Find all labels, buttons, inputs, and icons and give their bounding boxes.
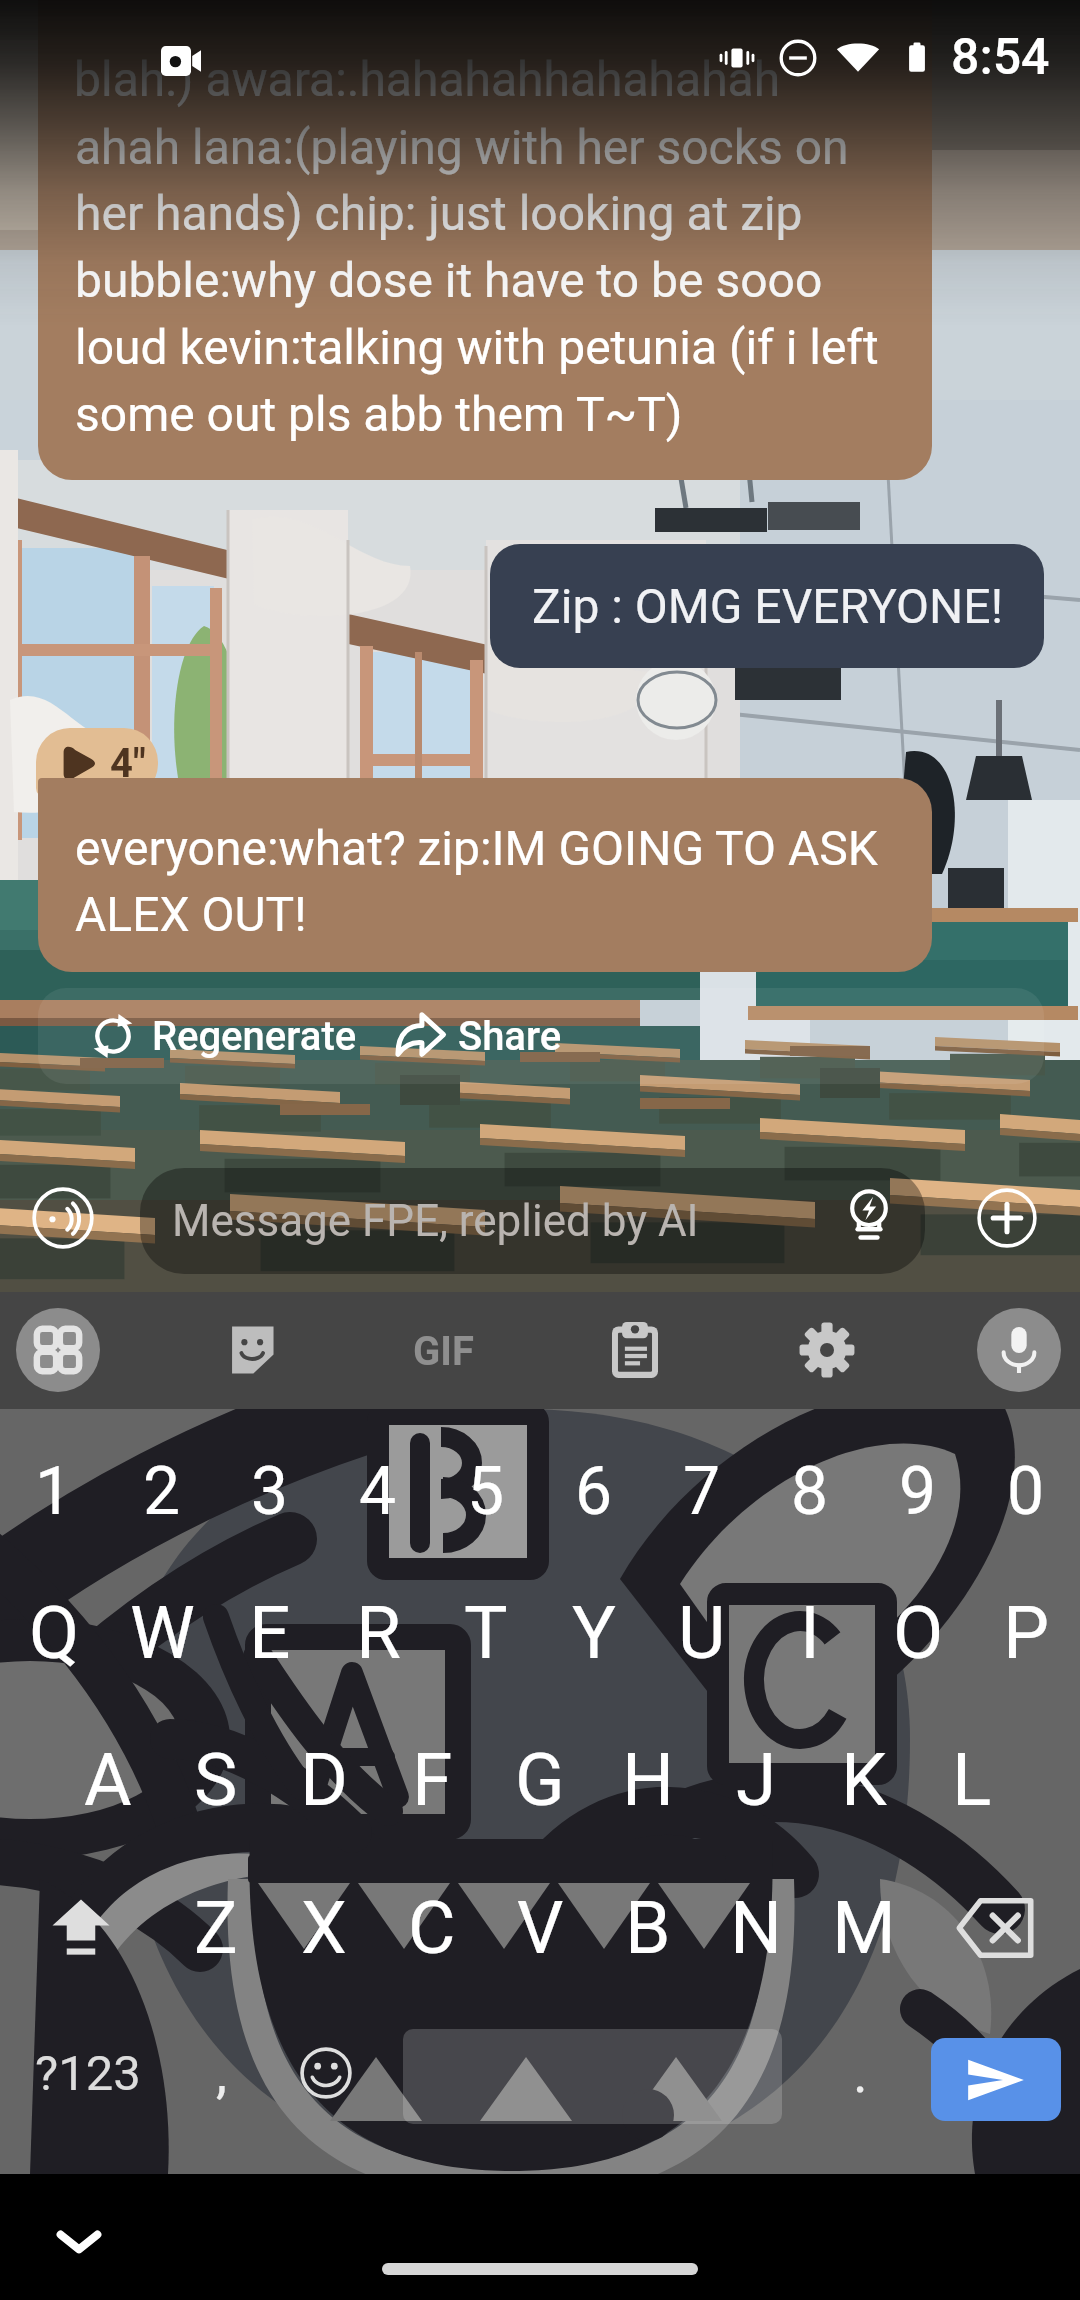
staticText: Share <box>458 1013 562 1060</box>
staticText: GIF <box>413 1328 474 1375</box>
button[interactable]: ?123 <box>28 2029 148 2117</box>
staticText: 4" <box>110 740 146 787</box>
button[interactable]: 5 <box>432 1437 540 1545</box>
staticText: Zip : OMG EVERYONE! <box>532 578 1003 634</box>
staticText: C <box>408 1885 456 1971</box>
staticText: blah:) awara:.hahahahhahahahah <box>74 51 954 107</box>
button[interactable]: 0 <box>972 1437 1080 1545</box>
button[interactable]: Backspace <box>940 1887 1050 1969</box>
staticText: 6 <box>575 1453 613 1530</box>
button[interactable]: Hide keyboard <box>50 2212 108 2270</box>
staticText: , <box>216 2040 228 2106</box>
button[interactable]: N <box>702 1874 810 1982</box>
button[interactable]: J <box>702 1726 810 1834</box>
button[interactable]: A <box>54 1726 162 1834</box>
staticText: F <box>412 1737 453 1823</box>
button[interactable]: Stickers <box>222 1322 278 1378</box>
button[interactable]: Message FPE, replied by AI <box>140 1168 925 1274</box>
button[interactable]: 1 <box>0 1437 108 1545</box>
button[interactable]: 8 <box>756 1437 864 1545</box>
staticText: everyone:what? zip:IM GOING TO ASK ALEX … <box>75 820 905 943</box>
staticText: A <box>84 1737 132 1823</box>
button[interactable]: Voice typing <box>977 1308 1061 1392</box>
button[interactable]: 3 <box>216 1437 324 1545</box>
staticText: Regenerate <box>152 1013 357 1060</box>
button[interactable]: 9 <box>864 1437 972 1545</box>
staticText: X <box>301 1885 347 1971</box>
staticText: Q <box>29 1590 80 1676</box>
button[interactable] <box>38 0 932 480</box>
staticText: L <box>952 1737 992 1823</box>
button[interactable]: H <box>594 1726 702 1834</box>
button[interactable] <box>38 778 932 972</box>
staticText: . <box>853 2040 868 2106</box>
button[interactable]: Regenerate <box>90 988 357 1084</box>
staticText: O <box>893 1590 944 1676</box>
button[interactable]: Q <box>0 1579 108 1687</box>
staticText: Y <box>572 1590 616 1676</box>
button[interactable]: L <box>918 1726 1026 1834</box>
button[interactable]: 7 <box>648 1437 756 1545</box>
button[interactable]: Send <box>931 2038 1061 2121</box>
button[interactable]: Add attachment <box>971 1182 1043 1254</box>
button[interactable]: C <box>378 1874 486 1982</box>
staticText: M <box>832 1885 896 1971</box>
button[interactable]: Y <box>540 1579 648 1687</box>
button[interactable]: Share <box>396 988 562 1084</box>
button[interactable]: 6 <box>540 1437 648 1545</box>
staticText: S <box>194 1737 238 1823</box>
button[interactable]: Zip : OMG EVERYONE! <box>490 544 1044 668</box>
button[interactable]: Apps <box>16 1308 100 1392</box>
staticText: P <box>1003 1590 1050 1676</box>
button[interactable]: F <box>378 1726 486 1834</box>
button[interactable]: M <box>810 1874 918 1982</box>
button[interactable]: B <box>594 1874 702 1982</box>
staticText: ?123 <box>35 2045 141 2102</box>
button[interactable]: X <box>270 1874 378 1982</box>
button[interactable]: Clipboard <box>612 1322 658 1378</box>
staticText: 8 <box>791 1453 829 1530</box>
button[interactable]: 4 <box>324 1437 432 1545</box>
button[interactable]: D <box>270 1726 378 1834</box>
button[interactable]: U <box>648 1579 756 1687</box>
staticText: V <box>517 1885 564 1971</box>
button[interactable]: G <box>486 1726 594 1834</box>
staticText: 5 <box>467 1453 505 1530</box>
button[interactable]: O <box>864 1579 972 1687</box>
staticText: T <box>464 1590 508 1676</box>
staticText: I <box>800 1590 820 1676</box>
button[interactable]: . <box>828 2029 892 2117</box>
staticText: 4 <box>359 1453 397 1530</box>
button[interactable]: GIF <box>398 1314 488 1388</box>
button[interactable]: P <box>972 1579 1080 1687</box>
button[interactable]: W <box>108 1579 216 1687</box>
staticText: 9 <box>899 1453 937 1530</box>
button[interactable]: K <box>810 1726 918 1834</box>
button[interactable]: E <box>216 1579 324 1687</box>
staticText: 2 <box>143 1453 181 1530</box>
staticText: D <box>300 1737 348 1823</box>
staticText: B <box>625 1885 671 1971</box>
button[interactable]: R <box>324 1579 432 1687</box>
button[interactable]: S <box>162 1726 270 1834</box>
button[interactable]: Voice input <box>27 1182 99 1254</box>
button[interactable]: Shift <box>27 1882 135 1974</box>
button[interactable]: Settings <box>799 1322 855 1378</box>
button[interactable]: 4" <box>36 728 158 798</box>
staticText: 0 <box>1007 1453 1045 1530</box>
staticText: 8:54 <box>951 28 1050 87</box>
staticText: N <box>730 1885 783 1971</box>
staticText: J <box>736 1737 777 1823</box>
staticText: Message FPE, replied by AI <box>172 1195 699 1247</box>
button[interactable]: Z <box>162 1874 270 1982</box>
button[interactable]: Smart suggestions <box>833 1180 905 1252</box>
button[interactable]: I <box>756 1579 864 1687</box>
button[interactable]: Space <box>403 2029 782 2124</box>
button[interactable]: Emoji <box>290 2037 362 2109</box>
button[interactable]: T <box>432 1579 540 1687</box>
button[interactable]: V <box>486 1874 594 1982</box>
button[interactable]: 2 <box>108 1437 216 1545</box>
button[interactable]: , <box>186 2029 258 2117</box>
staticText: H <box>622 1737 675 1823</box>
staticText: 3 <box>251 1453 289 1530</box>
